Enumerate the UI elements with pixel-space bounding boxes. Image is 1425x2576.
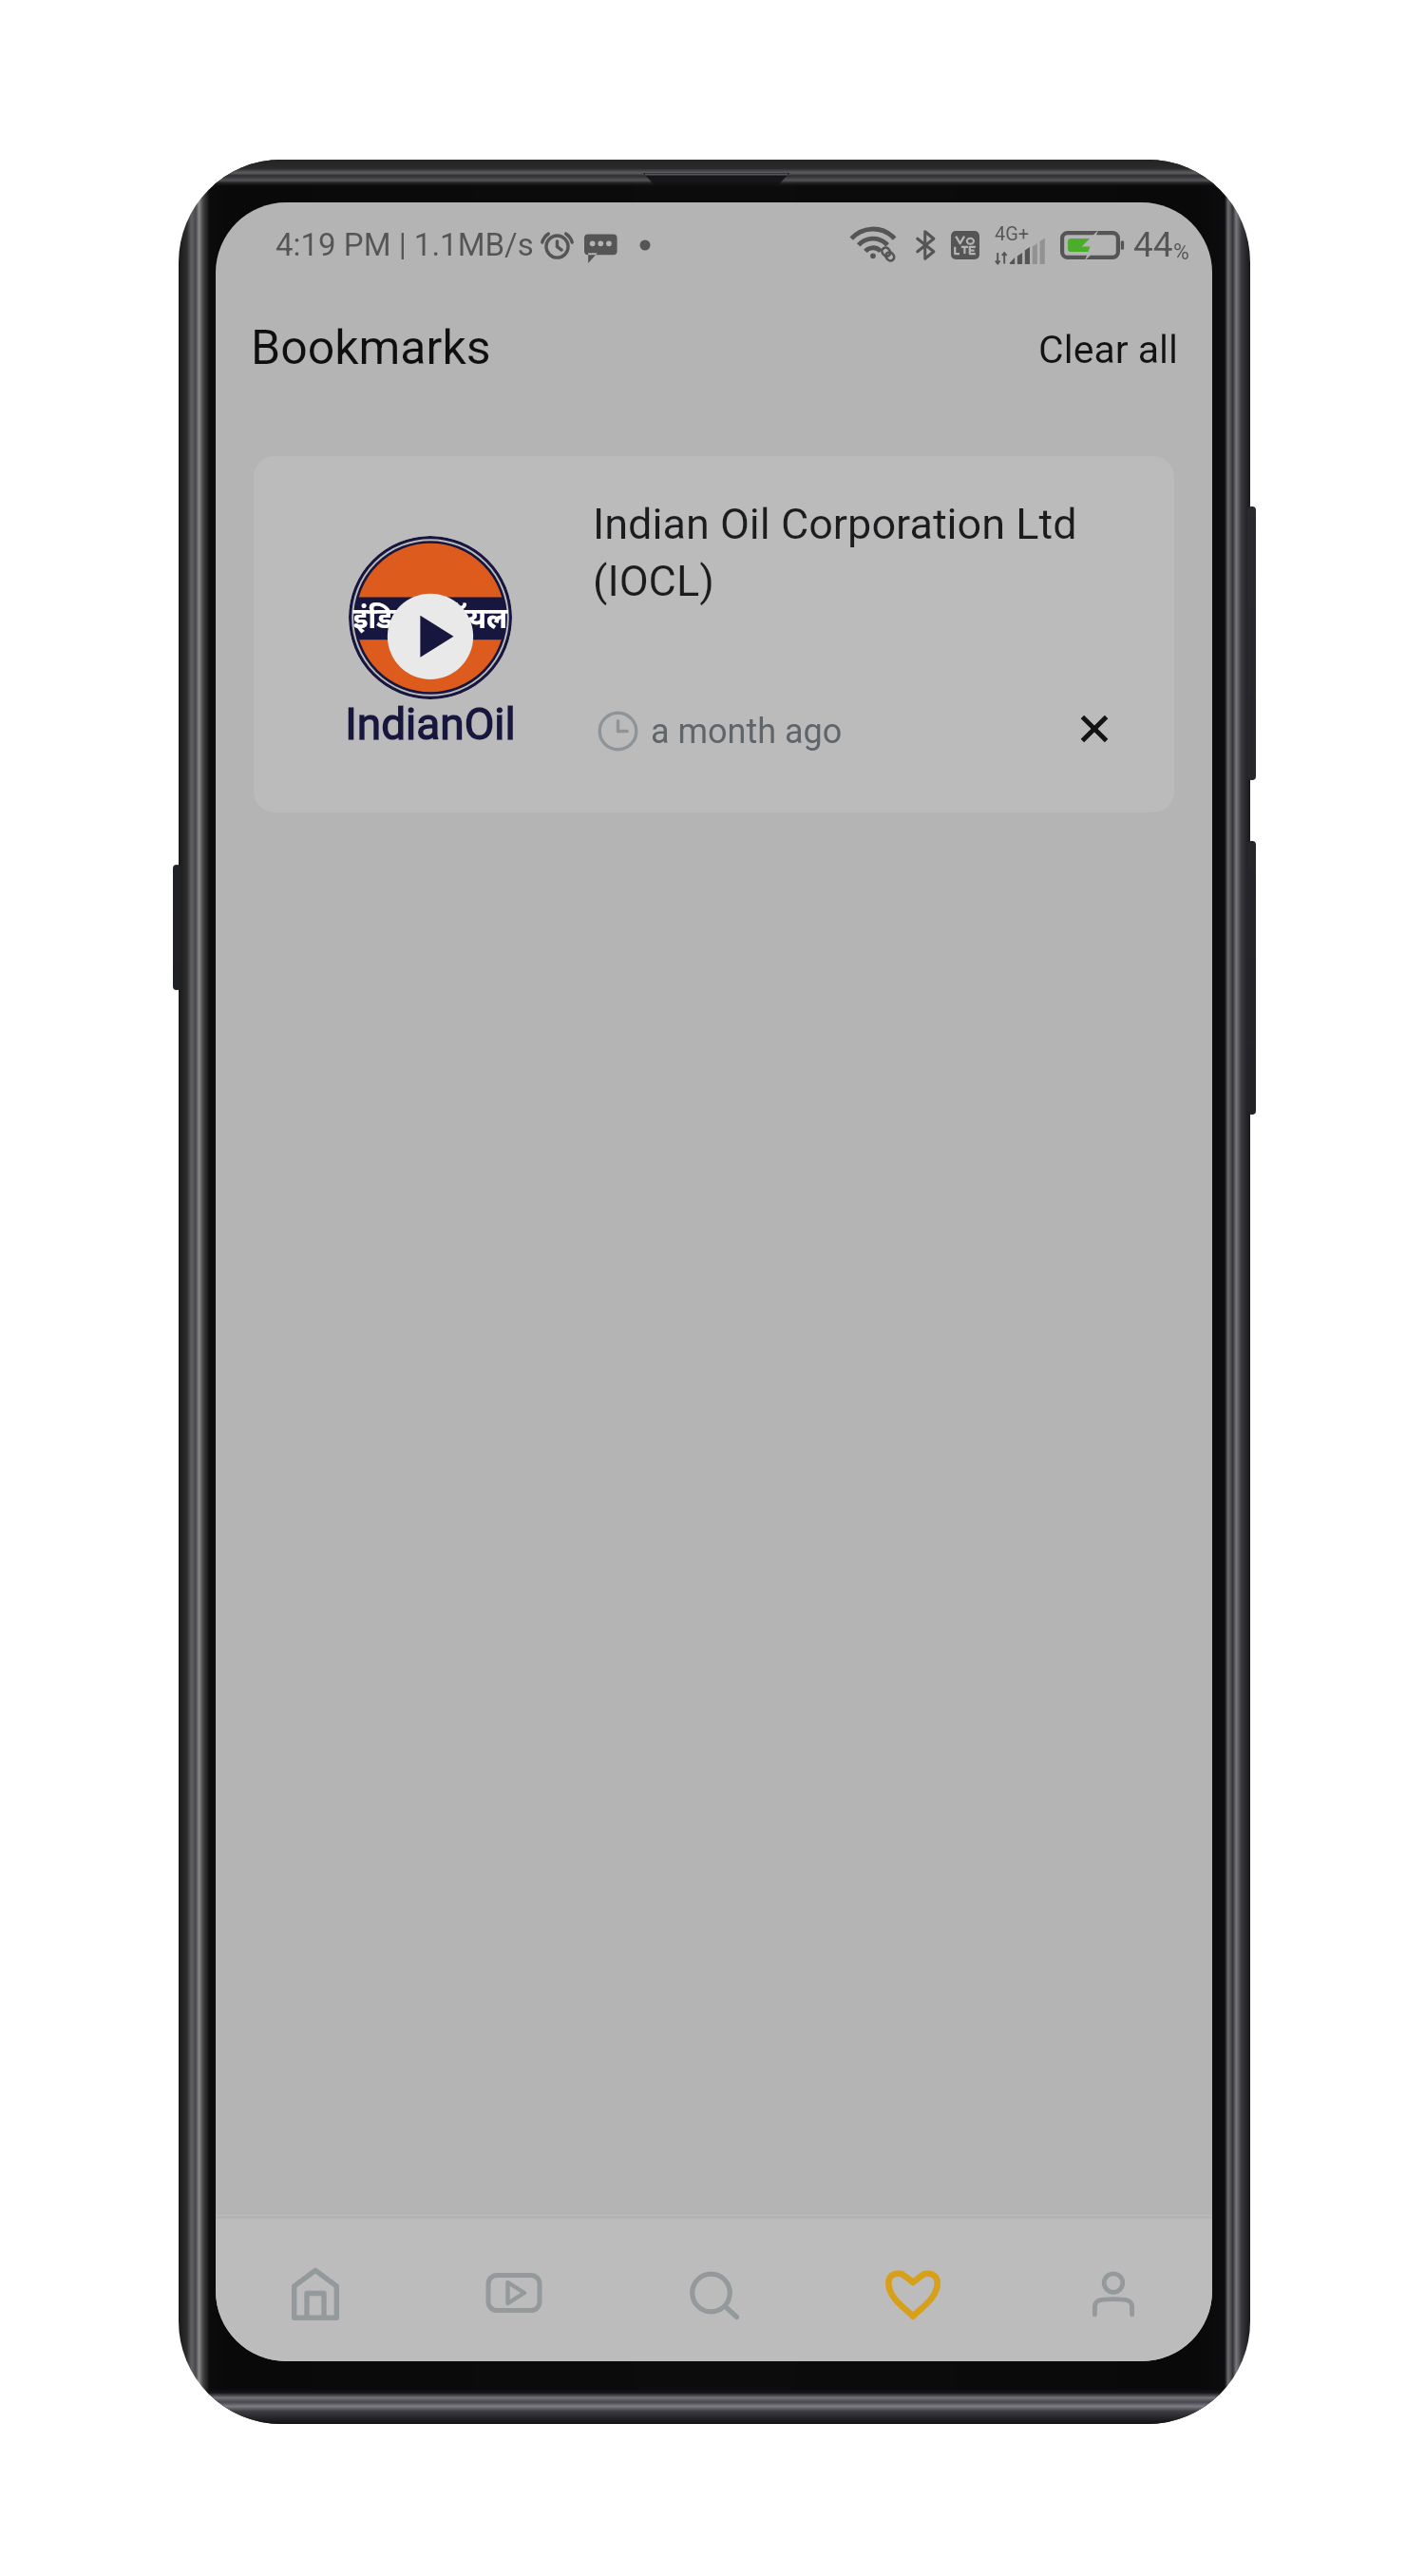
staticText: a month ago	[651, 712, 843, 752]
staticText: %	[1173, 239, 1189, 265]
staticText: Indian Oil Corporation Ltd (IOCL)	[593, 499, 1125, 605]
button[interactable]: Remove bookmark	[1066, 700, 1123, 757]
staticText: 4:19 PM | 1.1MB/s	[275, 226, 534, 263]
staticText: 44	[1133, 224, 1173, 265]
button[interactable]: Videos	[414, 2215, 614, 2361]
button[interactable]: Clear all	[1021, 310, 1196, 390]
staticText: IndianOil	[316, 698, 544, 750]
staticText: इंडियन ऑयल	[349, 602, 512, 639]
button[interactable]: Profile	[1013, 2215, 1212, 2361]
button[interactable]: Home	[216, 2215, 414, 2361]
staticText: Clear all	[1038, 327, 1179, 372]
staticText: 4G+	[995, 222, 1030, 244]
button[interactable]: Search	[614, 2215, 813, 2361]
button[interactable]: इंडियन ऑयल	[254, 456, 1174, 812]
staticText: Bookmarks	[251, 320, 491, 376]
button[interactable]: Favourites	[813, 2215, 1013, 2361]
